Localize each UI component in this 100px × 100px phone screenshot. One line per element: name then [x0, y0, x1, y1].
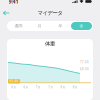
button[interactable]: 年	[50, 22, 71, 30]
staticText: マイデータ	[37, 10, 62, 16]
staticText: 全	[79, 23, 83, 28]
staticText: 7月	[48, 85, 53, 89]
button[interactable]: 全	[71, 22, 92, 30]
staticText: 8月	[60, 85, 65, 89]
staticText: 6月	[23, 85, 28, 89]
staticText: 週間	[14, 23, 22, 28]
staticText: 体重	[45, 40, 55, 47]
staticText: 年	[58, 23, 62, 28]
staticText: 6月	[11, 85, 16, 89]
staticText: 9:41	[8, 0, 18, 5]
button[interactable]: 月	[29, 22, 50, 30]
button[interactable]: Back	[0, 7, 14, 18]
button[interactable]: 週間	[8, 22, 29, 30]
staticText: 68.00	[80, 67, 89, 71]
staticText: 77.00	[80, 60, 89, 64]
staticText: 65.00	[9, 79, 18, 83]
staticText: 7月	[36, 85, 41, 89]
staticText: 8月	[73, 85, 78, 89]
staticText: 月	[37, 23, 41, 28]
